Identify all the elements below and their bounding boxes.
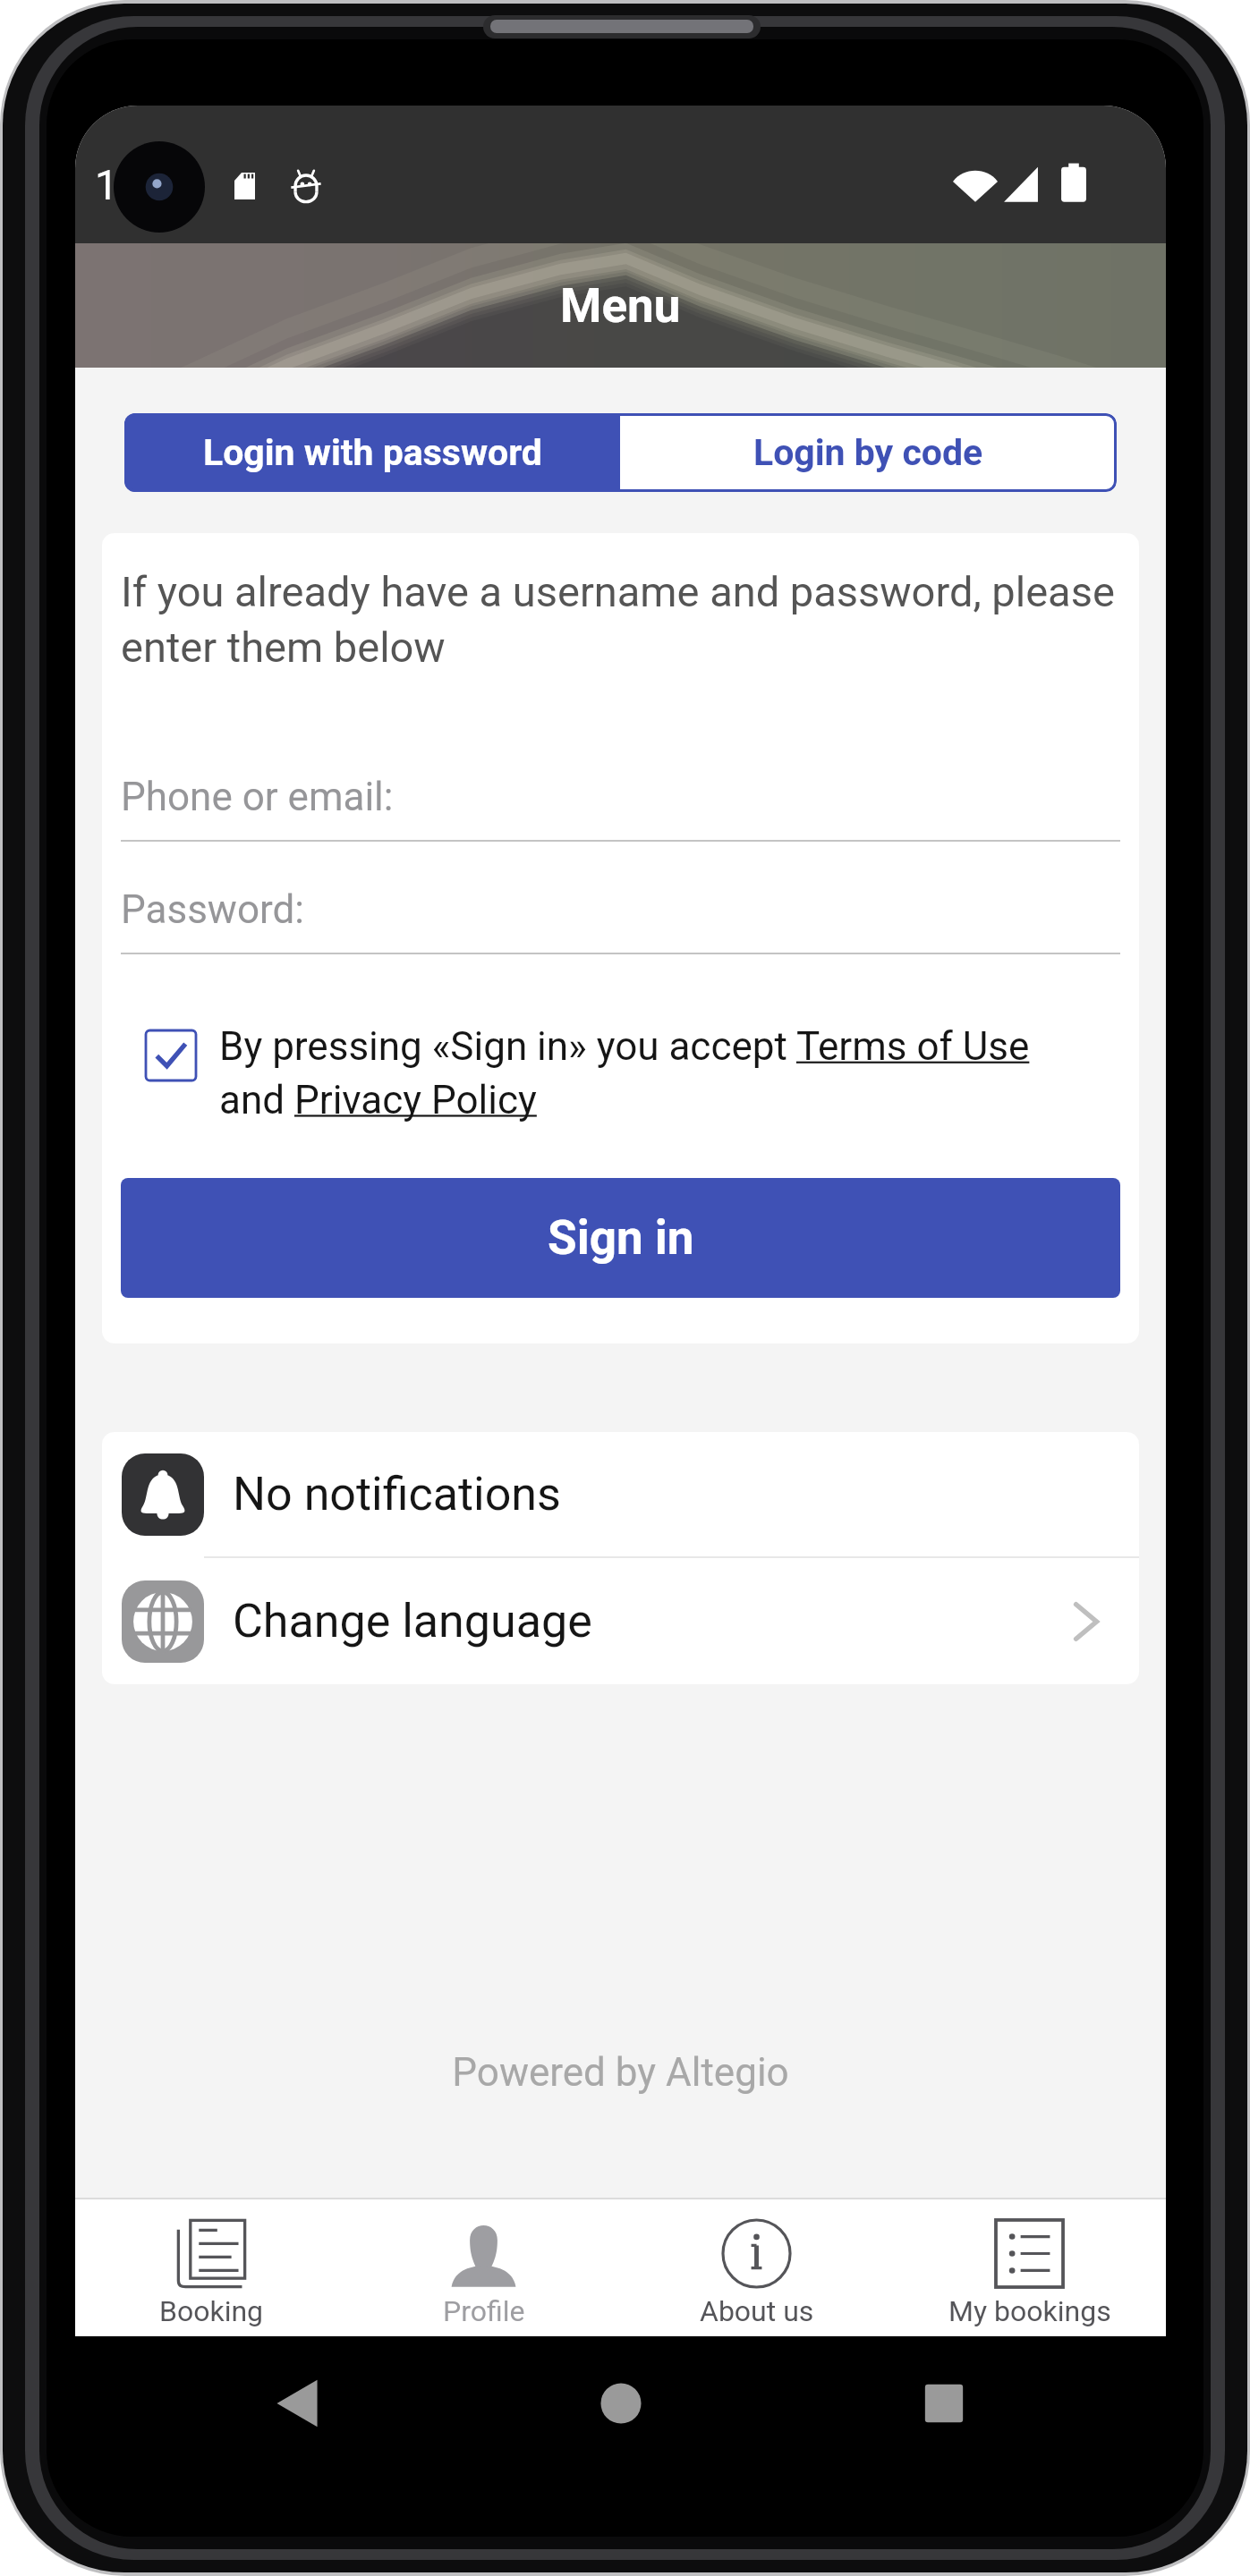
staticText: Menu	[560, 278, 681, 334]
staticText: No notifications	[233, 1467, 561, 1521]
staticText: If you already have a username and passw…	[121, 567, 1120, 673]
button[interactable]: Back	[256, 2362, 338, 2445]
staticText: Login by code	[753, 431, 983, 474]
button[interactable]: By pressing «Sign in» you accept Terms o…	[121, 1023, 1120, 1123]
staticText: Profile	[443, 2294, 525, 2328]
staticText: By pressing «Sign in» you accept Terms o…	[219, 1023, 1081, 1123]
staticText: Password:	[121, 886, 305, 933]
button[interactable]: Profile	[347, 2199, 620, 2336]
staticText: Booking	[159, 2294, 264, 2328]
staticText: Sign in	[548, 1210, 694, 1266]
button[interactable]: Change language	[102, 1558, 1139, 1684]
staticText: Powered by Altegio	[75, 2049, 1166, 2096]
button[interactable]: Sign in	[121, 1178, 1120, 1298]
staticText: Phone or email:	[121, 774, 394, 820]
staticText: Change language	[233, 1594, 592, 1648]
button[interactable]: Home	[580, 2362, 662, 2445]
staticText: My bookings	[948, 2294, 1111, 2328]
button[interactable]: Booking	[75, 2199, 347, 2336]
staticText: 1	[95, 161, 118, 209]
staticText: Login with password	[203, 431, 542, 474]
button[interactable]: No notifications	[102, 1432, 1139, 1556]
button[interactable]: Recent apps	[903, 2362, 985, 2445]
button[interactable]: Login by code	[620, 413, 1117, 492]
button[interactable]: Login with password	[124, 413, 620, 492]
button[interactable]: About us	[620, 2199, 893, 2336]
staticText: About us	[700, 2294, 814, 2328]
button[interactable]: My bookings	[893, 2199, 1166, 2336]
